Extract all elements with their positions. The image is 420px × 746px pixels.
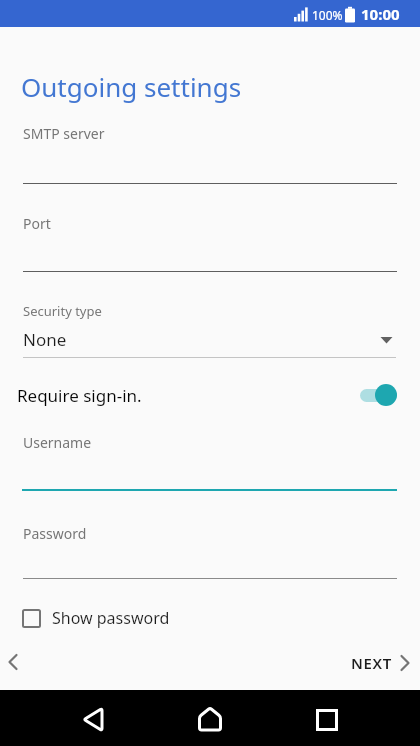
button[interactable]: Security type bbox=[0, 298, 420, 360]
staticText: 100% bbox=[312, 7, 343, 23]
staticText: Require sign-in. bbox=[17, 384, 142, 407]
staticText: Password bbox=[23, 524, 87, 543]
button[interactable] bbox=[186, 690, 234, 746]
staticText: Show password bbox=[52, 607, 170, 629]
button[interactable]: NEXT bbox=[340, 644, 420, 682]
staticText: None bbox=[23, 328, 67, 351]
staticText: SMTP server bbox=[23, 124, 105, 143]
button[interactable] bbox=[0, 644, 40, 682]
button[interactable]: Password bbox=[0, 517, 420, 583]
staticText: Security type bbox=[23, 302, 102, 320]
button[interactable]: Port bbox=[0, 208, 420, 278]
staticText: NEXT bbox=[351, 653, 392, 673]
button[interactable]: SMTP server bbox=[0, 118, 420, 188]
button[interactable] bbox=[70, 690, 118, 746]
button[interactable]: Username bbox=[0, 426, 420, 494]
staticText: Username bbox=[23, 433, 92, 452]
button[interactable]: Show password bbox=[14, 601, 178, 635]
staticText: Outgoing settings bbox=[21, 69, 242, 104]
button[interactable] bbox=[303, 690, 351, 746]
staticText: 10:00 bbox=[361, 4, 400, 24]
staticText: Port bbox=[23, 214, 51, 233]
button[interactable]: Require sign-in. bbox=[0, 376, 420, 416]
